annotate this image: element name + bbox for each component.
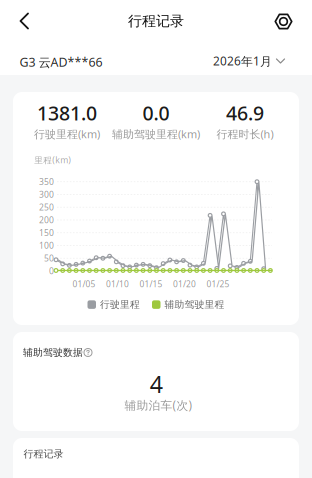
staticText: 行程时长(h) <box>216 127 273 141</box>
staticText: 250 <box>39 201 54 213</box>
staticText: 行驶里程 <box>100 298 140 311</box>
staticText: 辅助泊车(次) <box>124 397 192 413</box>
staticText: G3 云AD***66 <box>19 53 102 70</box>
staticText: 200 <box>39 214 54 226</box>
staticText: 01/20 <box>173 278 196 290</box>
staticText: 0.0 <box>142 100 169 126</box>
staticText: 里程(km) <box>34 154 71 166</box>
staticText: 行驶里程(km) <box>34 127 100 141</box>
staticText: 0 <box>49 265 54 277</box>
button[interactable]: 2026年1月 <box>165 53 285 69</box>
staticText: 150 <box>39 227 54 238</box>
staticText: 01/25 <box>207 278 230 290</box>
staticText: 350 <box>39 176 54 187</box>
staticText: 01/15 <box>140 278 163 290</box>
staticText: 300 <box>39 189 54 200</box>
staticText: 46.9 <box>226 100 264 126</box>
staticText: 行程记录 <box>23 448 63 460</box>
staticText: 01/10 <box>106 278 129 290</box>
staticText: 辅助驾驶数据 <box>23 346 83 359</box>
button[interactable]: G3 云AD***66 <box>19 53 159 70</box>
button[interactable] <box>83 348 92 357</box>
staticText: 辅助驾驶里程(km) <box>112 127 200 141</box>
button[interactable] <box>9 6 39 36</box>
staticText: 4 <box>150 368 163 400</box>
staticText: 01/05 <box>73 278 96 290</box>
staticText: 100 <box>39 240 54 251</box>
staticText: 行程记录 <box>128 12 184 30</box>
staticText: 1381.0 <box>37 100 97 126</box>
button[interactable] <box>270 8 296 34</box>
staticText: 50 <box>44 252 54 264</box>
staticText: 辅助驾驶里程 <box>164 298 224 311</box>
staticText: 2026年1月 <box>213 53 272 69</box>
